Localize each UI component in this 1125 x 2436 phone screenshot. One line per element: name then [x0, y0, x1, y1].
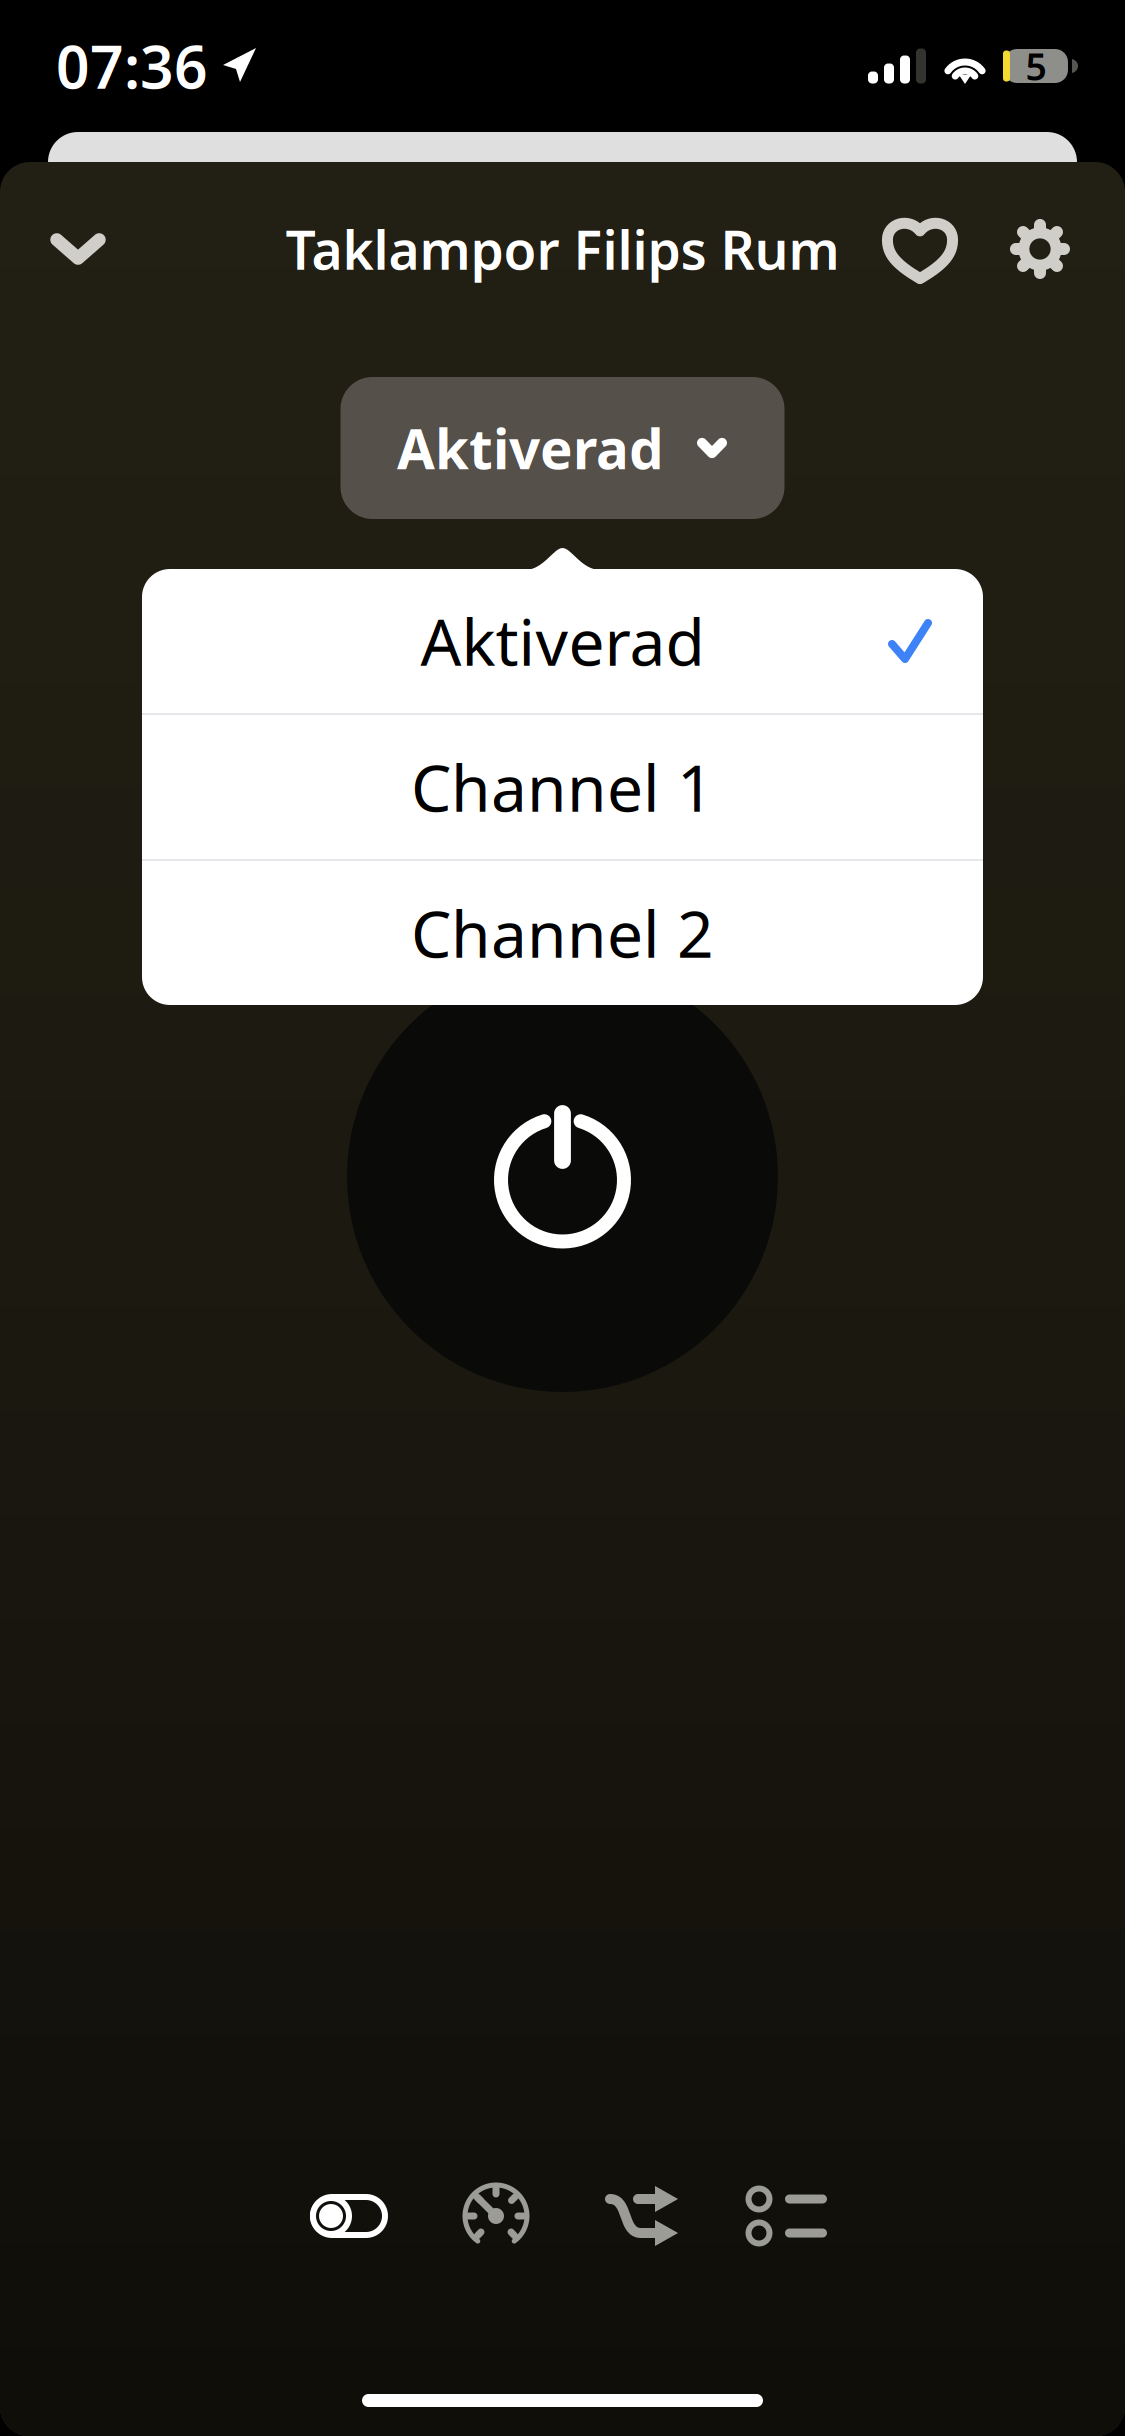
button[interactable]: Aktiverad — [142, 569, 983, 713]
staticText: Aktiverad — [397, 412, 664, 484]
button[interactable]: Power — [347, 961, 778, 1392]
button[interactable]: Channel 1 — [142, 715, 983, 859]
staticText: Taklampor Filips Rum — [285, 214, 839, 284]
staticText: Channel 2 — [411, 890, 714, 975]
staticText: 5 — [1025, 41, 1046, 91]
button[interactable]: Settings — [980, 162, 1100, 336]
button[interactable]: Close — [24, 162, 132, 336]
button[interactable]: Aktiverad — [340, 377, 784, 519]
staticText: Aktiverad — [420, 598, 704, 683]
button[interactable]: Brightness — [422, 2161, 569, 2271]
button[interactable]: Channel 2 — [142, 861, 983, 1005]
button[interactable]: More — [716, 2161, 863, 2271]
button[interactable]: Power switch — [275, 2161, 422, 2271]
staticText: 07:36 — [56, 27, 208, 105]
button[interactable]: Favourite — [860, 162, 980, 336]
staticText: Channel 1 — [411, 744, 714, 829]
button[interactable]: Scenes — [569, 2161, 716, 2271]
